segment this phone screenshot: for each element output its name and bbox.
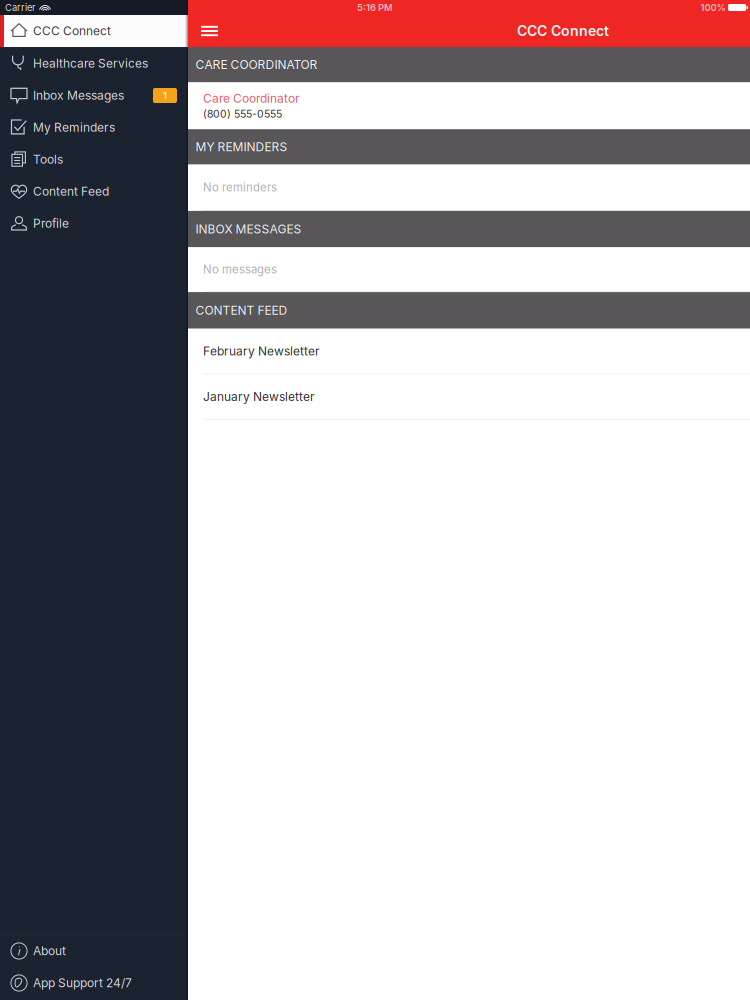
button[interactable]: January Newsletter [188,374,750,420]
staticText: Carrier [5,2,36,13]
staticText: CCC Connect [517,22,609,39]
staticText: About [33,944,66,958]
button[interactable]: No reminders [188,165,750,211]
staticText: CCC Connect [33,24,111,38]
button[interactable]: Content Feed [0,175,188,207]
staticText: CARE COORDINATOR [195,57,317,72]
staticText: Healthcare Services [33,56,148,71]
button[interactable]: Healthcare Services [0,47,188,79]
button[interactable]: Tools [0,143,188,175]
button[interactable]: About [0,935,188,967]
button[interactable]: Menu [188,15,230,47]
staticText: CONTENT FEED [195,303,287,318]
staticText: Tools [33,152,63,167]
staticText: 1 [163,90,167,101]
staticText: Profile [33,216,69,231]
button[interactable]: Care Coordinator [188,82,750,129]
staticText: 5:16 PM [357,2,393,13]
staticText: My Reminders [33,120,115,135]
staticText: Content Feed [33,184,109,199]
staticText: January Newsletter [203,389,315,404]
button[interactable]: February Newsletter [188,329,750,374]
staticText: MY REMINDERS [195,140,287,154]
button[interactable]: Inbox Messages [0,79,188,111]
staticText: No messages [203,262,277,276]
staticText: 100% [701,2,726,13]
button[interactable]: Profile [0,207,188,239]
button[interactable]: App Support 24/7 [0,967,188,999]
staticText: (800) 555-0555 [203,108,282,120]
button[interactable]: No messages [188,247,750,292]
staticText: No reminders [203,180,277,194]
staticText: Care Coordinator [203,91,300,106]
staticText: INBOX MESSAGES [195,222,301,236]
staticText: February Newsletter [203,344,320,358]
button[interactable]: My Reminders [0,111,188,143]
staticText: App Support 24/7 [33,976,132,990]
staticText: Inbox Messages [33,88,124,103]
button[interactable]: CCC Connect [0,15,188,47]
